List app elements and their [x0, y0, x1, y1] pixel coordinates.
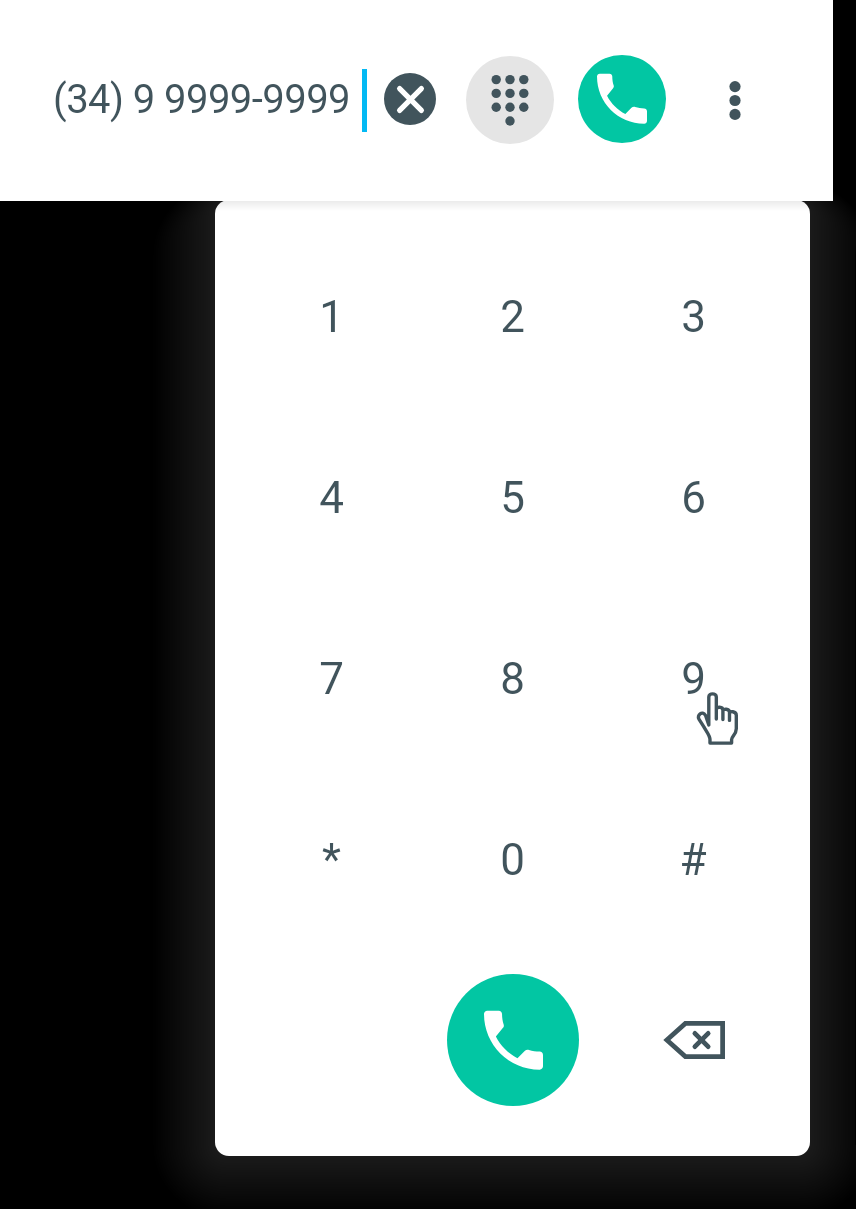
staticText: 7 [319, 653, 344, 705]
button[interactable]: Show dialpad [466, 56, 554, 144]
button[interactable]: More options [705, 54, 765, 146]
button[interactable]: Clear [384, 73, 436, 125]
staticText: 1 [319, 291, 344, 343]
button[interactable]: * [241, 808, 421, 912]
staticText: 2 [500, 291, 525, 343]
staticText: 6 [681, 472, 706, 524]
button[interactable]: 9 [603, 627, 783, 731]
staticText: 8 [500, 653, 525, 705]
button[interactable]: Call [578, 55, 666, 143]
staticText: * [322, 834, 341, 886]
staticText: 4 [319, 472, 344, 524]
button[interactable]: Backspace [639, 990, 749, 1090]
button[interactable]: Call [447, 974, 579, 1106]
staticText: 5 [500, 472, 525, 524]
staticText: # [679, 834, 707, 886]
button[interactable]: Phone number [24, 50, 370, 150]
button[interactable]: 8 [422, 627, 602, 731]
button[interactable]: 2 [422, 265, 602, 369]
staticText: 3 [681, 291, 706, 343]
button[interactable]: 4 [241, 446, 421, 550]
staticText: (34) 9 9999-9999 [53, 76, 351, 123]
staticText: 9 [681, 653, 706, 705]
button[interactable]: 3 [603, 265, 783, 369]
button[interactable]: 5 [422, 446, 602, 550]
button[interactable]: 0 [422, 808, 602, 912]
button[interactable]: 6 [603, 446, 783, 550]
button[interactable]: 1 [241, 265, 421, 369]
staticText: 0 [500, 834, 525, 886]
button[interactable]: # [603, 808, 783, 912]
button[interactable]: 7 [241, 627, 421, 731]
